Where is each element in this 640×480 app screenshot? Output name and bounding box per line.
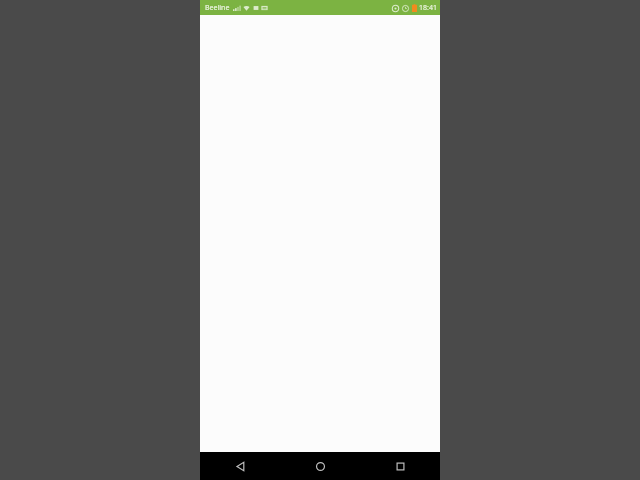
staticText: Beeline <box>205 3 230 13</box>
button[interactable]: Back <box>200 452 280 480</box>
staticText: 18:41 <box>419 3 437 13</box>
button[interactable]: Recent apps <box>360 452 440 480</box>
button[interactable]: Home <box>280 452 360 480</box>
